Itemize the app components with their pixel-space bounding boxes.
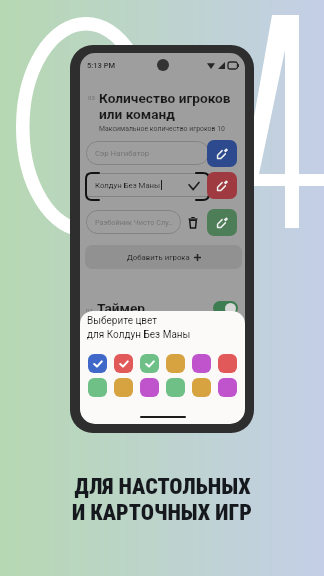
button[interactable]: Включить таймер <box>213 301 238 315</box>
button[interactable]: Добавить игрока <box>85 245 242 269</box>
button[interactable]: Выбрать цвет <box>207 140 237 167</box>
button[interactable]: Цвет <box>166 378 185 397</box>
button[interactable]: Цвет <box>166 354 185 373</box>
staticText: Колдун Без Маны <box>95 181 161 190</box>
button[interactable]: Цвет <box>192 354 211 373</box>
staticText: 5:13 PM <box>87 61 115 70</box>
button[interactable]: Разбойник Чисто Слу… <box>86 210 181 234</box>
button[interactable]: Цвет <box>218 378 237 397</box>
staticText: Сэр Нагибатор <box>95 149 150 158</box>
button[interactable]: Цвет <box>114 378 133 397</box>
staticText: Количество игроков или команд <box>99 90 231 122</box>
button[interactable]: Цвет <box>192 378 211 397</box>
button[interactable]: Цвет <box>218 354 237 373</box>
staticText: Выберите цвет для Колдун Без Маны <box>87 315 191 341</box>
staticText: Таймер <box>97 300 146 316</box>
button[interactable]: Цвет <box>140 354 159 373</box>
staticText: И КАРТОЧНЫХ ИГР <box>72 500 252 526</box>
button[interactable]: Выбрать цвет <box>207 209 237 236</box>
button[interactable]: Цвет <box>140 378 159 397</box>
button[interactable]: Цвет <box>88 354 107 373</box>
button[interactable]: Выбрать цвет <box>207 172 237 199</box>
button[interactable]: Колдун Без Маны <box>86 173 209 197</box>
staticText: 03 <box>88 94 95 101</box>
staticText: Добавить игрока <box>127 253 190 262</box>
staticText: 04 <box>86 307 93 314</box>
staticText: Максимальное количество игроков 10 <box>99 125 225 133</box>
button[interactable]: Удалить игрока <box>185 214 201 230</box>
button[interactable]: Цвет <box>114 354 133 373</box>
button[interactable]: Сэр Нагибатор <box>86 141 209 165</box>
button[interactable]: Цвет <box>88 378 107 397</box>
staticText: ДЛЯ НАСТОЛЬНЫХ <box>74 474 251 500</box>
staticText: Разбойник Чисто Слу… <box>95 218 174 227</box>
